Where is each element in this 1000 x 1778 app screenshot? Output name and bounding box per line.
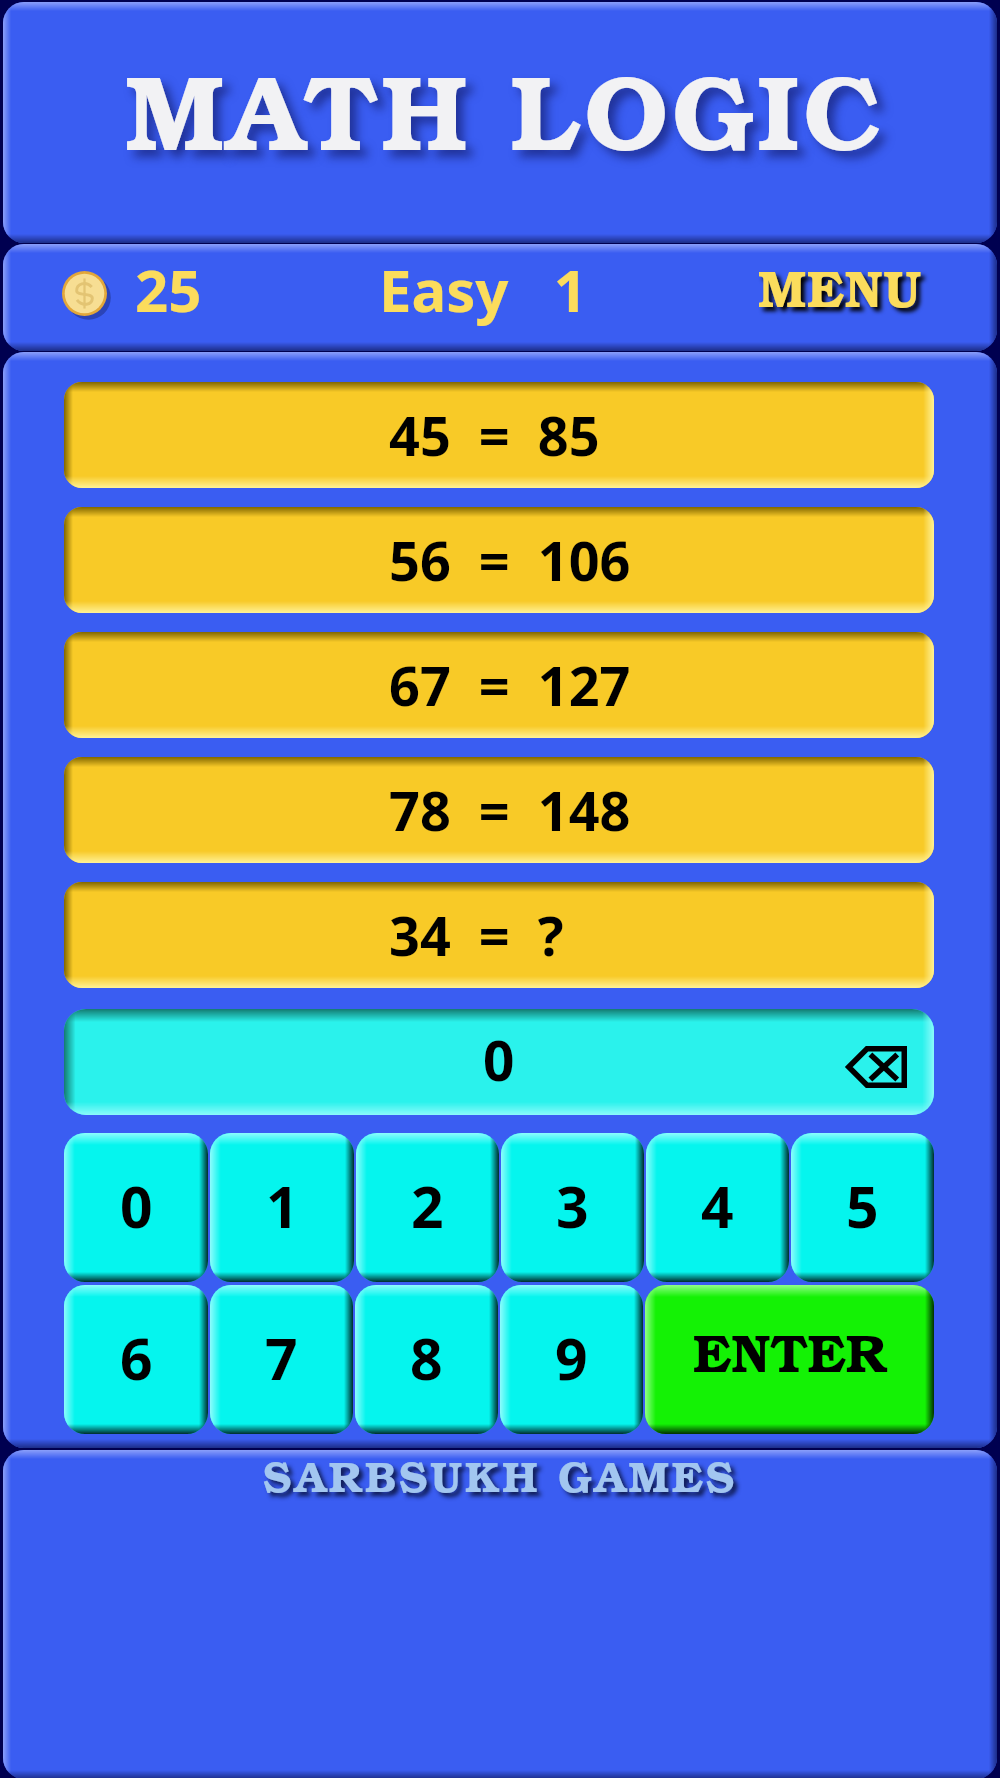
button[interactable]: ENTER xyxy=(645,1285,934,1434)
staticText: ENTER xyxy=(693,1311,887,1388)
button[interactable]: 0 xyxy=(64,1133,208,1282)
button[interactable]: 7 xyxy=(210,1285,353,1434)
staticText: 2 xyxy=(411,1167,444,1245)
staticText: 9 xyxy=(555,1319,588,1397)
button[interactable]: 34 = ? xyxy=(64,882,934,988)
staticText: 6 xyxy=(120,1319,153,1397)
button[interactable]: 4 xyxy=(646,1133,789,1282)
button[interactable]: Backspace xyxy=(846,1046,907,1088)
staticText: 67 = 127 xyxy=(389,648,631,722)
button[interactable]: 8 xyxy=(355,1285,498,1434)
staticText: 0 xyxy=(483,1022,515,1097)
button[interactable]: 67 = 127 xyxy=(64,632,934,738)
staticText: 4 xyxy=(701,1167,734,1245)
staticText: 34 = ? xyxy=(389,898,564,972)
staticText: 7 xyxy=(265,1319,298,1397)
button[interactable]: 0 xyxy=(64,1009,934,1115)
staticText: 8 xyxy=(410,1319,443,1397)
staticText: 5 xyxy=(846,1167,879,1245)
staticText: 78 = 148 xyxy=(389,773,631,847)
button[interactable]: 1 xyxy=(210,1133,354,1282)
staticText: 1 xyxy=(266,1167,299,1245)
button[interactable]: 6 xyxy=(64,1285,208,1434)
staticText: MENU xyxy=(758,248,923,322)
button[interactable]: 9 xyxy=(500,1285,643,1434)
staticText: 56 = 106 xyxy=(389,523,631,597)
staticText: 25 xyxy=(135,250,202,329)
staticText: MATH LOGIC xyxy=(125,29,885,182)
button[interactable]: MENU xyxy=(758,231,1000,338)
button[interactable]: 2 xyxy=(356,1133,499,1282)
button[interactable]: 5 xyxy=(791,1133,934,1282)
button[interactable]: 45 = 85 xyxy=(64,382,934,488)
staticText: 0 xyxy=(120,1167,153,1245)
staticText: SARBSUKH GAMES xyxy=(3,1442,997,1505)
button[interactable]: 3 xyxy=(501,1133,644,1282)
button[interactable]: 78 = 148 xyxy=(64,757,934,863)
staticText: 3 xyxy=(556,1167,589,1245)
staticText: Easy 1 xyxy=(379,250,587,329)
staticText: 45 = 85 xyxy=(389,398,600,472)
button[interactable]: 56 = 106 xyxy=(64,507,934,613)
